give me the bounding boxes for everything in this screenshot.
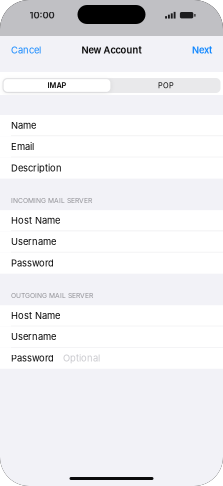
staticText: Username [11, 236, 56, 247]
staticText: INCOMING MAIL SERVER [11, 196, 92, 205]
staticText: Host Name [11, 215, 60, 226]
staticText: New Account [81, 44, 141, 56]
button[interactable]: Email [0, 136, 223, 157]
staticText: 10:00 [29, 10, 54, 21]
button[interactable]: Host Name [0, 210, 223, 231]
button[interactable]: Password [0, 348, 223, 369]
button[interactable]: Next [186, 39, 223, 61]
staticText: IMAP [47, 81, 66, 90]
staticText: Description [11, 162, 62, 174]
staticText: OUTGOING MAIL SERVER [11, 292, 93, 300]
button[interactable]: Name [0, 115, 223, 136]
staticText: Name [11, 120, 36, 131]
button[interactable]: Cancel [0, 39, 47, 61]
staticText: Host Name [11, 310, 60, 321]
staticText: Cancel [11, 44, 41, 56]
staticText: Username [11, 331, 56, 342]
staticText: Email [11, 141, 34, 152]
staticText: POP [158, 81, 174, 90]
button[interactable]: Host Name [0, 305, 223, 326]
button[interactable]: IMAP [2, 78, 111, 93]
button[interactable]: Description [0, 157, 223, 179]
staticText: Optional [63, 353, 100, 364]
button[interactable]: POP [111, 78, 220, 93]
button[interactable]: Password [0, 252, 223, 274]
staticText: Password [11, 353, 54, 364]
button[interactable]: Username [0, 326, 223, 348]
staticText: Password [11, 257, 54, 269]
staticText: Next [192, 44, 212, 56]
button[interactable]: Username [0, 231, 223, 252]
